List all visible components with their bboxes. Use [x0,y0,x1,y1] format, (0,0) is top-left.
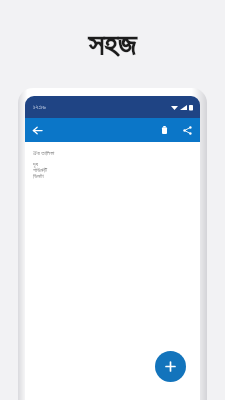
staticText: ১২:১৬ [33,103,46,111]
button[interactable]: Share [176,118,198,142]
staticText: ডিমটা [33,173,44,179]
staticText: ক্রয় তালিকা [33,149,55,157]
staticText: দুধ [33,161,39,167]
button[interactable]: Add note [155,351,186,382]
staticText: সহজ [88,30,137,61]
staticText: পাউরুটি [33,167,48,173]
button[interactable]: Delete [152,118,176,142]
button[interactable]: Back [25,118,49,142]
